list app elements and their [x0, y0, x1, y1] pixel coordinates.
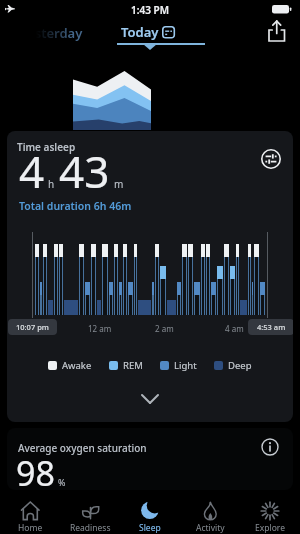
button[interactable] — [142, 395, 158, 404]
staticText: Average oxygen saturation — [18, 441, 147, 455]
button[interactable]: Home — [2, 490, 58, 534]
staticText: Home — [18, 522, 43, 534]
staticText: Explore — [255, 522, 285, 534]
staticText: 1:43 PM — [131, 3, 169, 17]
button[interactable] — [261, 149, 281, 169]
staticText: 10:07 pm — [16, 322, 49, 332]
staticText: % — [58, 476, 66, 488]
staticText: 43 — [59, 141, 110, 201]
button[interactable]: Today — [121, 23, 175, 41]
button[interactable]: Readiness — [62, 490, 118, 534]
staticText: m — [114, 177, 124, 191]
button[interactable] — [266, 20, 287, 42]
staticText: Activity — [196, 522, 225, 534]
button[interactable]: Yesterday — [0, 24, 72, 44]
button[interactable]: Activity — [182, 490, 238, 534]
staticText: Time asleep — [17, 140, 76, 154]
staticText: Sleep — [139, 522, 161, 534]
staticText: REM — [123, 359, 143, 372]
button[interactable]: Sleep — [122, 490, 178, 534]
staticText: 4 — [19, 141, 45, 201]
staticText: Deep — [228, 359, 252, 372]
staticText: Awake — [62, 359, 92, 372]
staticText: 2 am — [155, 323, 174, 334]
staticText: 98 — [16, 450, 55, 490]
staticText: Yesterday — [20, 24, 83, 42]
staticText: Total duration 6h 46m — [19, 199, 132, 213]
button[interactable] — [261, 438, 279, 456]
staticText: 4:53 am — [257, 322, 286, 332]
staticText: 4 am — [225, 323, 244, 334]
staticText: Light — [174, 359, 197, 372]
staticText: h — [48, 177, 55, 191]
button[interactable]: Explore — [242, 490, 298, 534]
staticText: Readiness — [70, 522, 111, 534]
staticText: Today — [121, 23, 159, 41]
staticText: 12 am — [88, 323, 112, 334]
